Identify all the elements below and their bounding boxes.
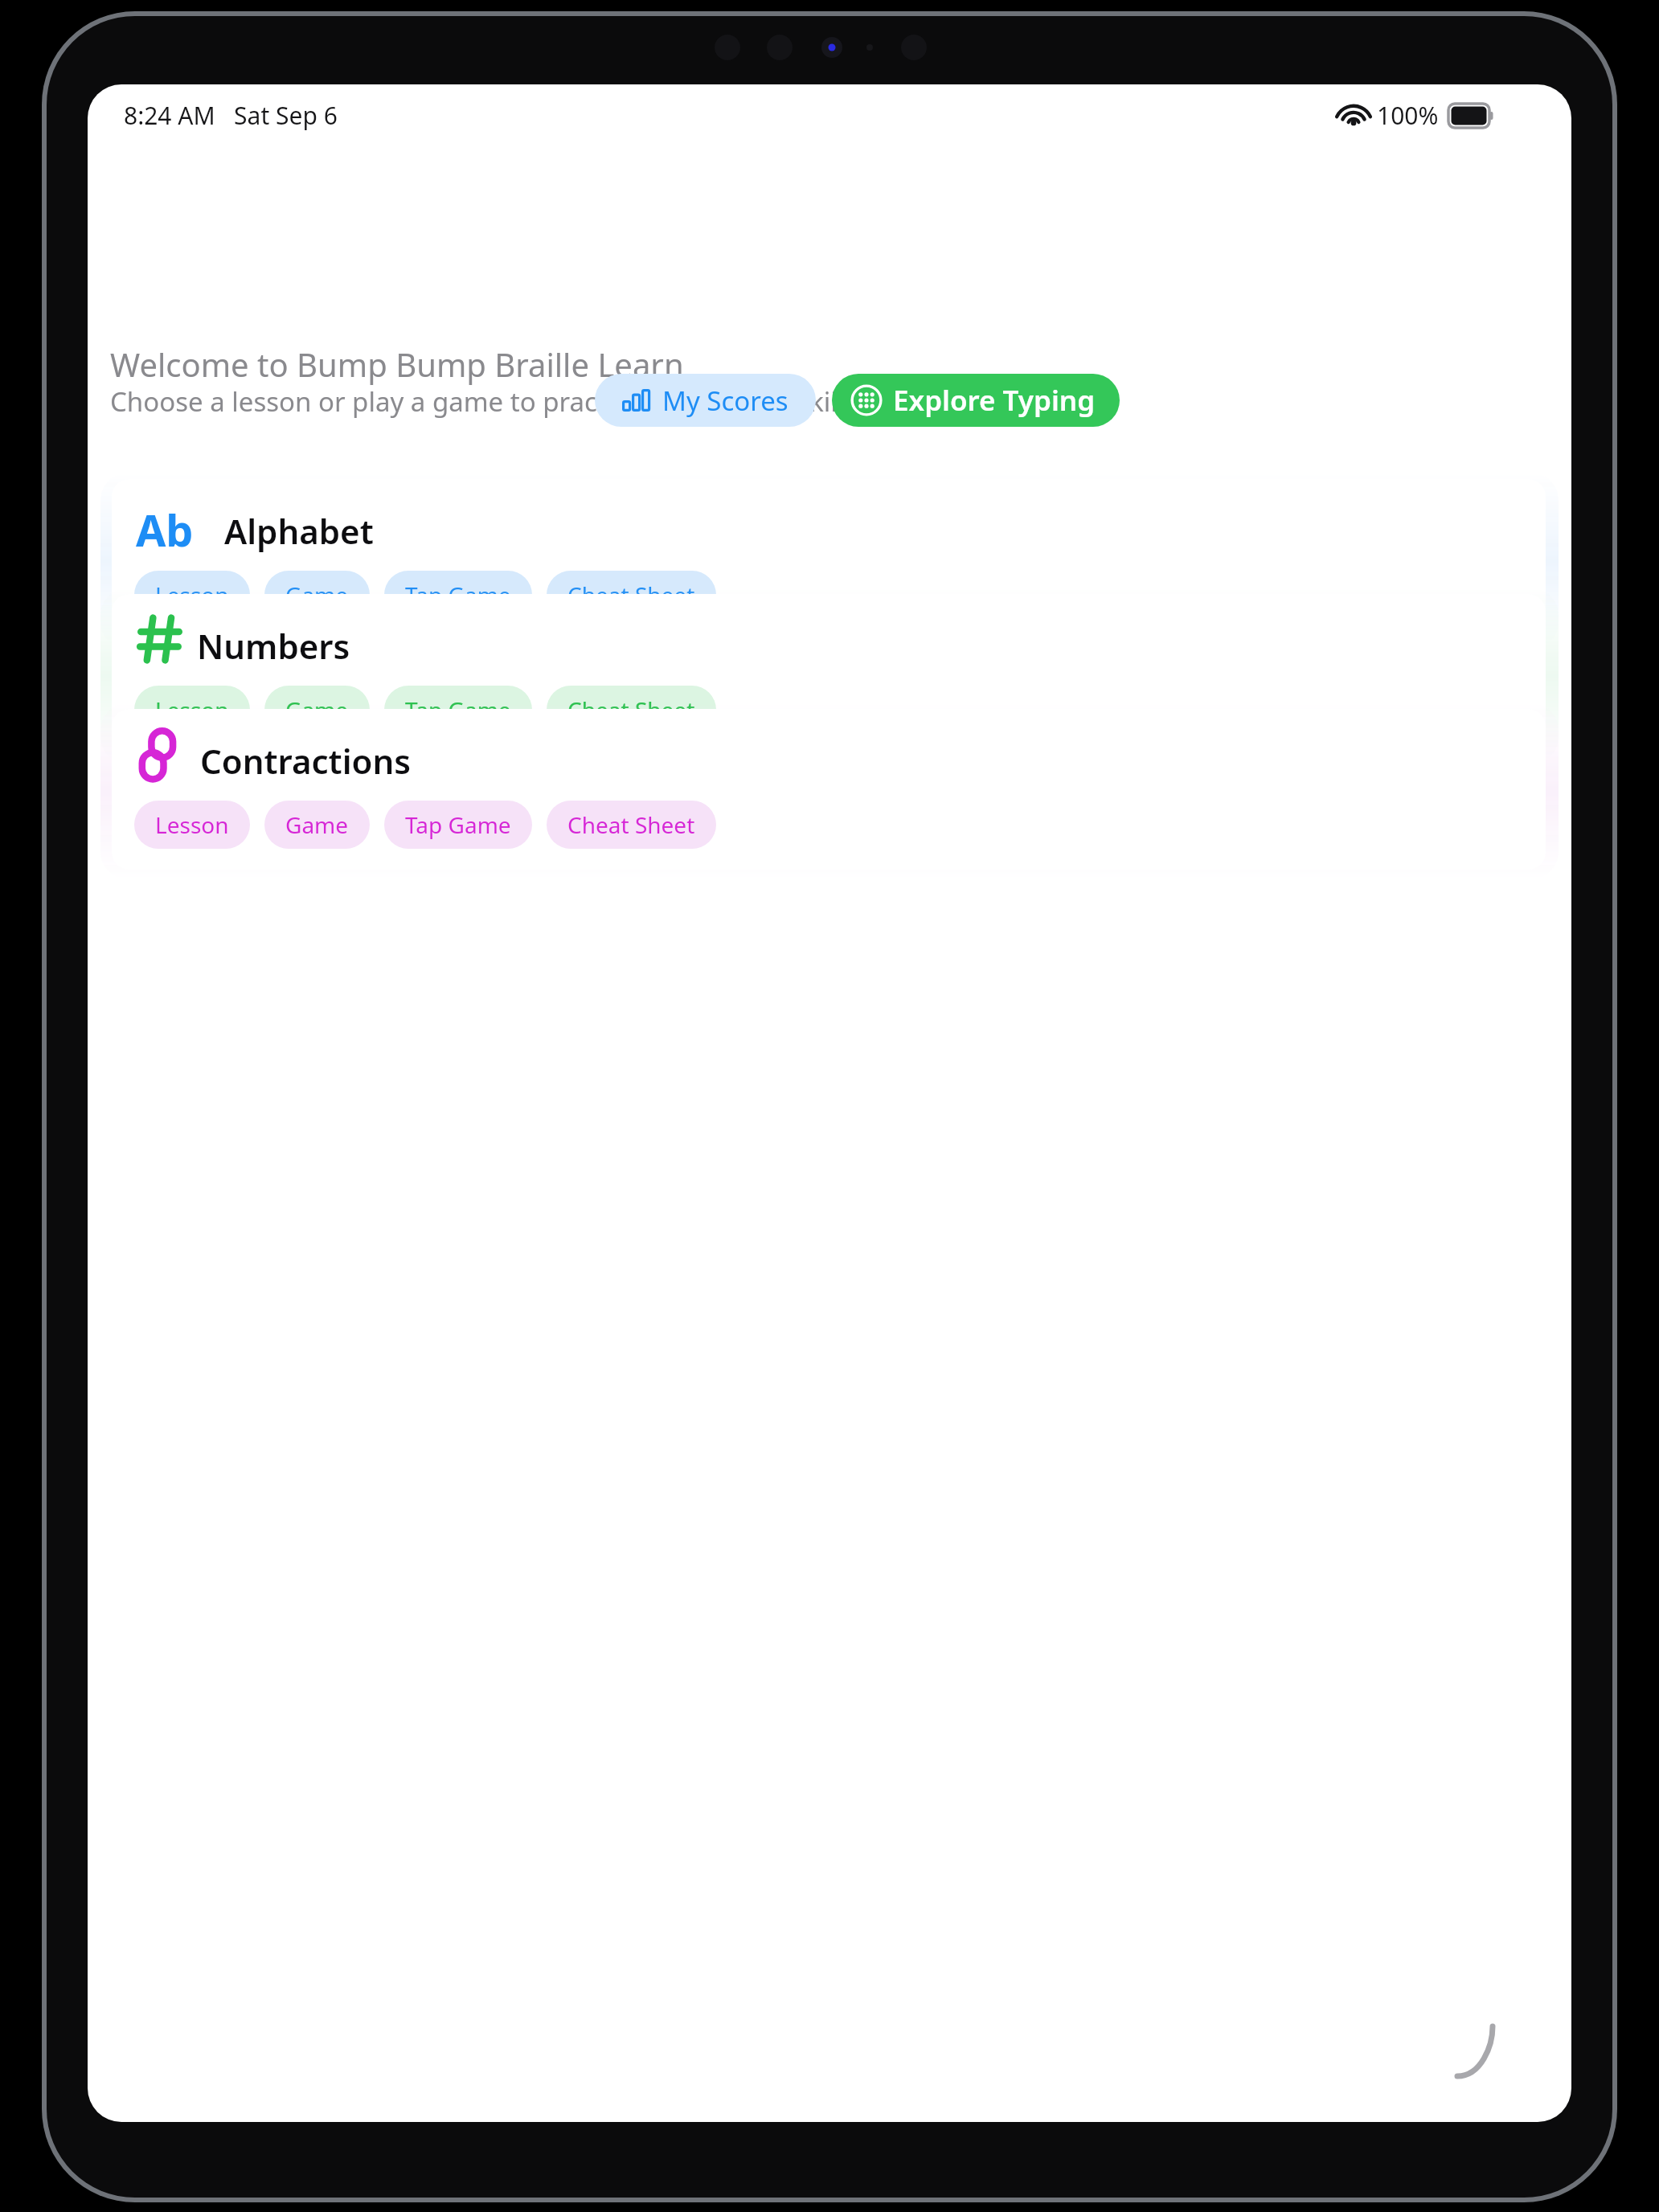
button[interactable]: Tap Game <box>384 571 532 619</box>
staticText: Cheat Sheet <box>567 580 695 610</box>
button[interactable]: Tap Game <box>384 686 532 734</box>
button[interactable]: Numbers <box>112 594 1546 755</box>
staticText: Welcome to Bump Bump Braille Learn <box>110 342 684 386</box>
staticText: Tap Game <box>405 580 511 610</box>
button[interactable]: Cheat Sheet <box>547 571 716 619</box>
staticText: Abc <box>136 500 213 619</box>
button[interactable]: Contractions <box>112 709 1546 870</box>
staticText: Choose a lesson or play a game to practi… <box>110 383 865 420</box>
button[interactable]: Cheat Sheet <box>547 686 716 734</box>
staticText: 8:24 AM Sat Sep 6 <box>124 99 338 132</box>
button[interactable]: Game <box>264 686 370 734</box>
staticText: 100% <box>1377 99 1439 132</box>
staticText: Explore Typing <box>893 381 1096 420</box>
staticText: Game <box>285 694 349 725</box>
staticText: Tap Game <box>405 809 511 840</box>
button[interactable]: My Scores <box>595 374 816 427</box>
staticText: Cheat Sheet <box>567 694 695 725</box>
staticText: Game <box>285 580 349 610</box>
staticText: Cheat Sheet <box>567 809 695 840</box>
button[interactable]: Lesson <box>134 801 250 849</box>
button[interactable]: Cheat Sheet <box>547 801 716 849</box>
button[interactable]: Game <box>264 571 370 619</box>
staticText: Lesson <box>155 694 229 725</box>
button[interactable]: Lesson <box>134 571 250 619</box>
staticText: Contractions <box>200 738 411 784</box>
button[interactable]: Lesson <box>134 686 250 734</box>
staticText: Numbers <box>197 623 350 669</box>
staticText: Lesson <box>155 580 229 610</box>
staticText: Tap Game <box>405 694 511 725</box>
button[interactable]: Abc <box>112 479 1546 640</box>
staticText: My Scores <box>662 383 789 419</box>
staticText: Lesson <box>155 809 229 840</box>
staticText: Game <box>285 809 349 840</box>
staticText: Alphabet <box>224 508 374 554</box>
button[interactable]: Tap Game <box>384 801 532 849</box>
button[interactable]: Explore Typing <box>832 374 1120 427</box>
button[interactable]: Game <box>264 801 370 849</box>
